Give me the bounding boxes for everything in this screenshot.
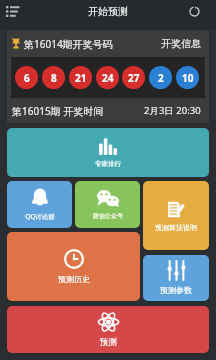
staticText: 开始预测 bbox=[88, 5, 128, 18]
staticText: QQ讨论群 bbox=[25, 212, 55, 221]
button[interactable]: Refresh bbox=[185, 2, 203, 20]
staticText: 预测历史 bbox=[58, 274, 90, 284]
staticText: 开奖信息 bbox=[161, 37, 201, 50]
staticText: 2月3日 20:30 bbox=[144, 104, 201, 117]
button[interactable]: 预测算法说明 bbox=[143, 181, 209, 250]
staticText: 24 bbox=[102, 71, 114, 85]
staticText: 2 bbox=[158, 71, 164, 85]
staticText: 微信公众号 bbox=[93, 212, 123, 220]
staticText: 21 bbox=[75, 71, 87, 85]
staticText: 6 bbox=[24, 71, 30, 85]
staticText: 8 bbox=[51, 71, 57, 85]
button[interactable]: 专家排行 bbox=[7, 128, 209, 177]
staticText: 第16015期 开奖时间 bbox=[12, 104, 104, 118]
staticText: 第16014期开奖号码 bbox=[24, 37, 113, 51]
staticText: 专家排行 bbox=[95, 160, 121, 168]
staticText: 27 bbox=[128, 71, 140, 85]
staticText: 预测算法说明 bbox=[155, 223, 197, 232]
button[interactable]: QQ讨论群 bbox=[7, 181, 72, 228]
staticText: 10 bbox=[182, 71, 194, 85]
staticText: 预测 bbox=[100, 337, 117, 348]
button[interactable]: Menu bbox=[2, 0, 24, 22]
button[interactable]: 预测 bbox=[7, 306, 209, 353]
button[interactable]: 预测历史 bbox=[7, 232, 140, 301]
button[interactable]: 微信公众号 bbox=[75, 181, 140, 228]
button[interactable]: 预测参数 bbox=[143, 255, 209, 301]
staticText: 预测参数 bbox=[160, 285, 192, 295]
